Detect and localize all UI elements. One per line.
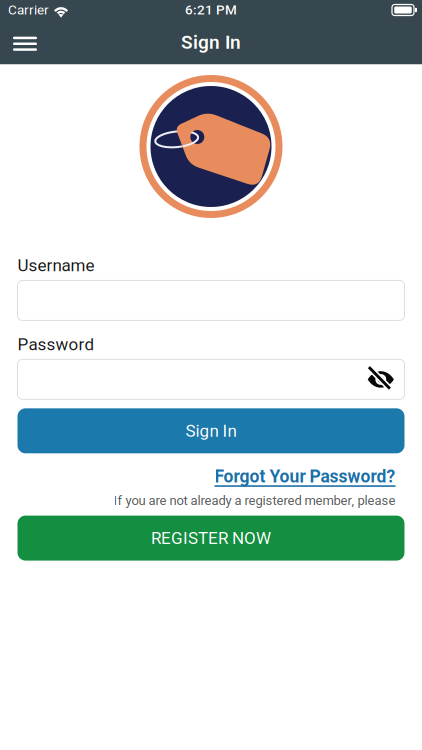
button[interactable]: REGISTER NOW (17, 516, 404, 561)
button[interactable]: Sign In (17, 408, 404, 453)
button[interactable]: Show password (363, 360, 397, 398)
staticText: If you are not already a registered memb… (113, 493, 395, 508)
staticText: REGISTER NOW (151, 528, 271, 548)
staticText: Password (17, 334, 94, 354)
staticText: Carrier (8, 2, 49, 18)
staticText: Sign In (181, 31, 241, 53)
button[interactable]: Forgot Your Password? (214, 466, 404, 487)
staticText: Username (17, 255, 94, 275)
staticText: Forgot Your Password? (214, 466, 395, 487)
button[interactable]: Menu (3, 20, 47, 64)
staticText: Sign In (185, 421, 236, 441)
staticText: 6:21 PM (185, 2, 237, 18)
